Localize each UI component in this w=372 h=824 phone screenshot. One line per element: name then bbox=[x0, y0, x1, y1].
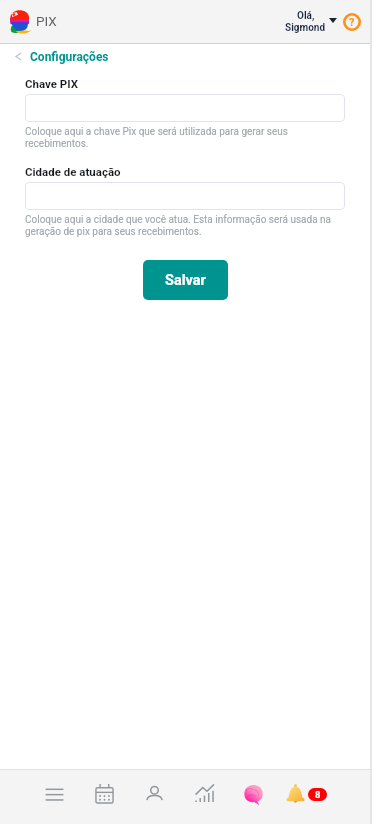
staticText: Coloque aqui a chave Pix que será utiliz… bbox=[25, 126, 345, 150]
staticText: Chave PIX bbox=[25, 77, 79, 90]
button[interactable]: Inteligência bbox=[240, 780, 266, 806]
button[interactable]: Open account menu bbox=[285, 10, 337, 34]
button[interactable]: Salvar bbox=[143, 260, 228, 300]
button[interactable]: Help bbox=[343, 13, 361, 31]
staticText: Cidade de atuação bbox=[25, 165, 121, 178]
staticText: Sigmond bbox=[285, 22, 326, 34]
staticText: ? bbox=[349, 16, 355, 29]
staticText: Configurações bbox=[30, 50, 109, 64]
button[interactable]: 8 new notifications bbox=[308, 788, 327, 801]
button[interactable]: Configurações bbox=[0, 48, 115, 66]
button[interactable]: Relatórios bbox=[191, 780, 217, 806]
staticText: PIX bbox=[36, 13, 57, 29]
staticText: Salvar bbox=[165, 272, 206, 289]
button[interactable]: Menu bbox=[41, 780, 67, 806]
staticText: Olá, bbox=[297, 10, 315, 22]
staticText: 8 bbox=[315, 789, 321, 800]
button[interactable]: Agenda bbox=[91, 780, 117, 806]
button[interactable]: Text field bbox=[25, 182, 345, 210]
button[interactable]: Perfil bbox=[141, 780, 167, 806]
button[interactable]: Text field bbox=[25, 94, 345, 122]
staticText: Coloque aqui a cidade que você atua. Est… bbox=[25, 214, 345, 238]
button[interactable]: Notificações bbox=[282, 780, 308, 806]
